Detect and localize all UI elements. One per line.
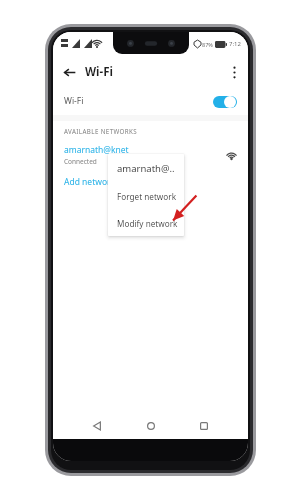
button[interactable]: Add network <box>53 170 248 194</box>
staticText: Forget network <box>117 191 177 202</box>
staticText: 7:12 <box>229 40 241 48</box>
button[interactable]: amarnath@knet <box>53 140 248 170</box>
button[interactable]: Home <box>141 416 161 436</box>
button[interactable]: Forget network <box>108 183 184 210</box>
button[interactable]: amarnath@.. <box>108 154 184 183</box>
button[interactable]: More options <box>224 62 244 82</box>
staticText: Add network <box>64 176 116 188</box>
button[interactable]: Modify network <box>108 210 184 236</box>
staticText: Modify network <box>117 218 178 229</box>
staticText: AVAILABLE NETWORKS <box>64 127 138 135</box>
staticText: amarnath@knet <box>64 144 129 156</box>
button[interactable]: Back <box>58 61 80 83</box>
button[interactable]: Back <box>87 416 107 436</box>
staticText: Wi-Fi <box>85 64 113 80</box>
staticText: amarnath@.. <box>117 162 175 175</box>
button[interactable]: Wi-Fi <box>53 87 248 115</box>
button[interactable]: Recent apps <box>194 416 214 436</box>
staticText: Wi-Fi <box>64 95 213 107</box>
staticText: Connected <box>64 157 97 166</box>
staticText: 87% <box>202 41 213 48</box>
